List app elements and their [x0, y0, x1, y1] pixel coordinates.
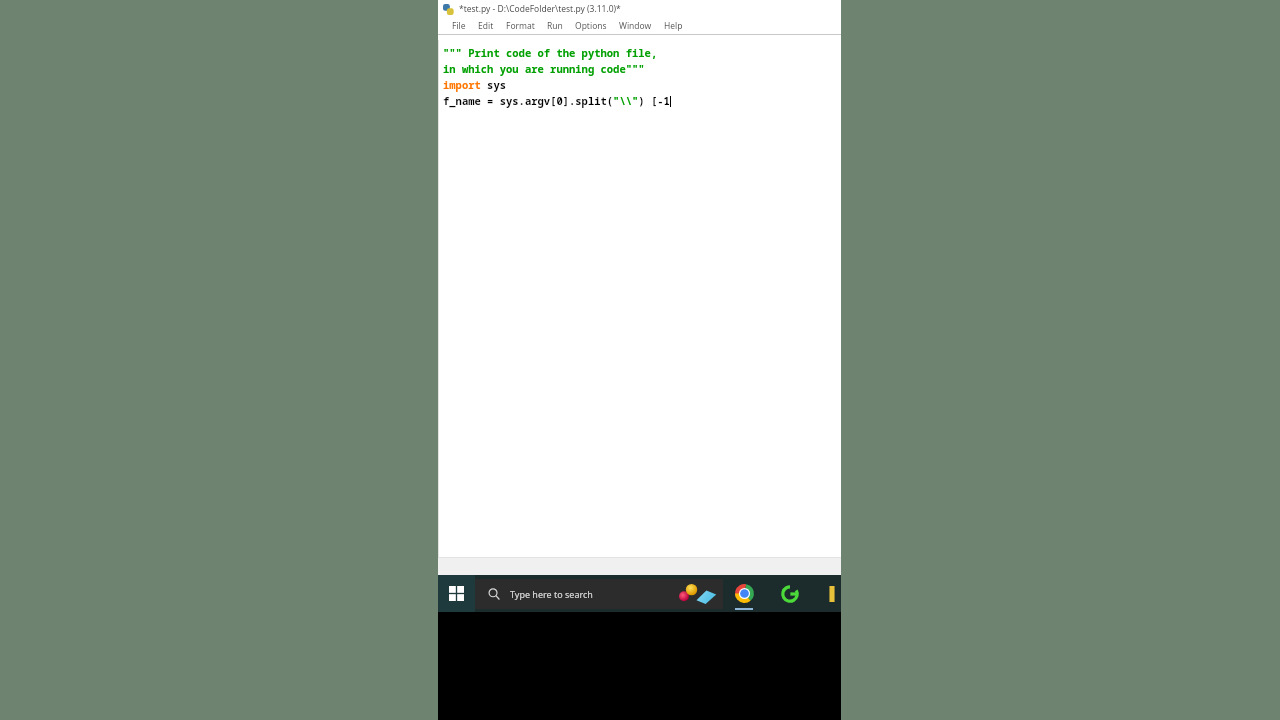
staticText: import sys [443, 78, 506, 92]
button[interactable]: Format [500, 19, 541, 33]
button[interactable]: Run [541, 19, 569, 33]
button[interactable]: Start [438, 575, 475, 612]
staticText: Window [619, 20, 652, 32]
staticText: f_name = sys.argv[0].split("\\") [-1 [443, 94, 670, 108]
button[interactable]: Grammarly [776, 575, 804, 612]
button[interactable]: Options [569, 19, 613, 33]
staticText: Type here to search [510, 588, 593, 600]
staticText: """ Print code of the python file, [443, 46, 658, 60]
staticText: in which you are running code""" [443, 62, 645, 76]
staticText: Format [506, 20, 535, 32]
button[interactable]: App [822, 575, 841, 612]
staticText: *test.py - D:\CodeFolder\test.py (3.11.0… [459, 3, 621, 15]
staticText: Edit [478, 20, 494, 32]
button[interactable]: Edit [472, 19, 500, 33]
staticText: Run [547, 20, 563, 32]
button[interactable]: File [446, 19, 472, 33]
button[interactable]: Type here to search [475, 579, 723, 609]
staticText: File [452, 20, 466, 32]
button[interactable]: Help [658, 19, 689, 33]
staticText: Options [575, 20, 607, 32]
button[interactable]: Google Chrome [730, 575, 758, 612]
staticText: Help [664, 20, 683, 32]
button[interactable]: Window [613, 19, 658, 33]
